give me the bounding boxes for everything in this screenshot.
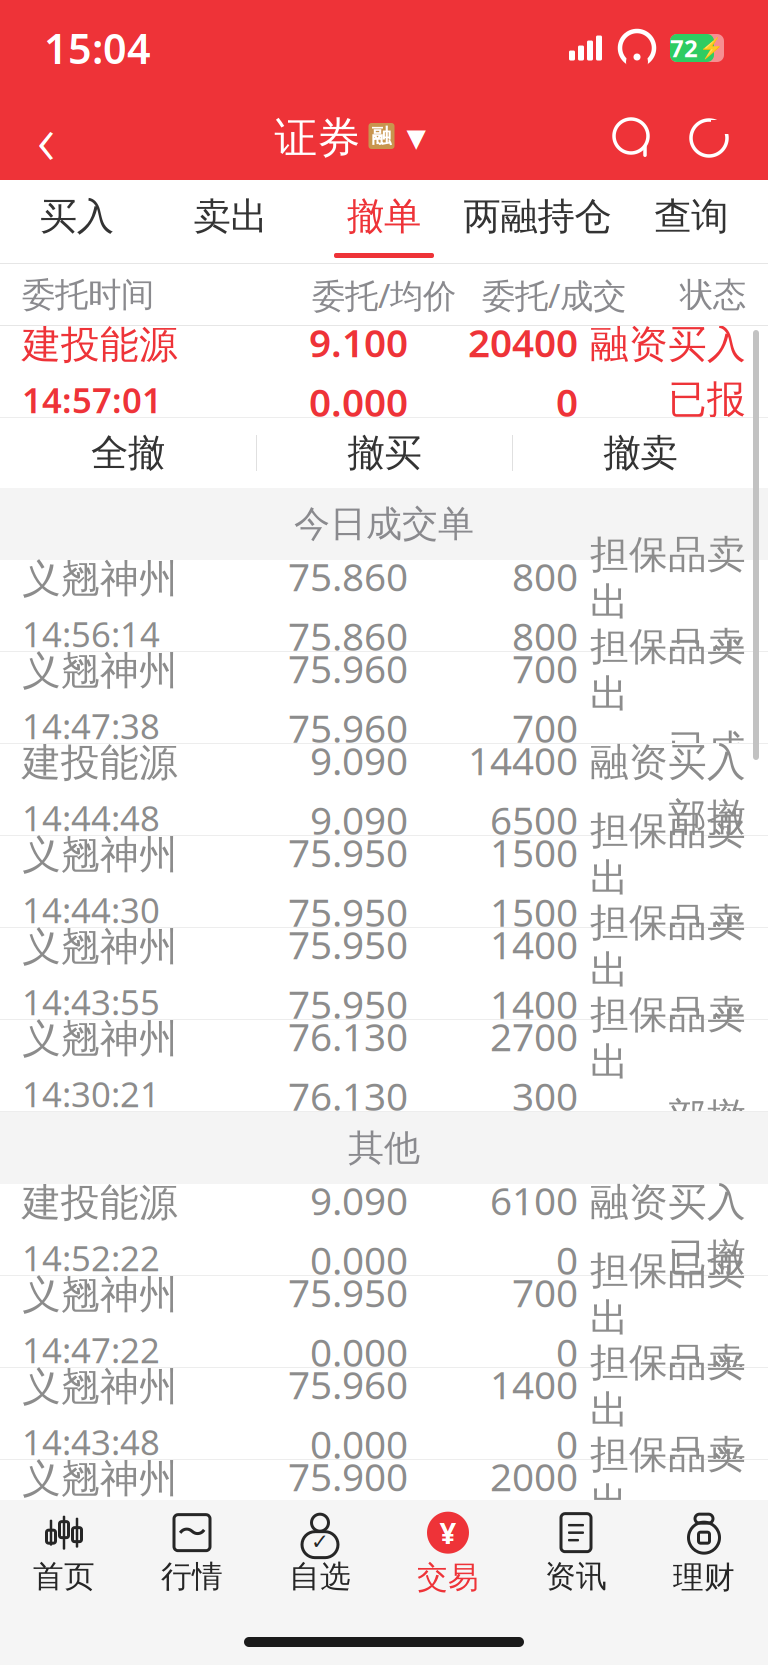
- staticText: 700: [512, 643, 578, 694]
- staticText: 300: [512, 1070, 578, 1121]
- button[interactable]: 建投能源: [0, 744, 768, 836]
- button[interactable]: 首页: [0, 1500, 128, 1608]
- staticText: 9.090: [310, 735, 408, 786]
- button[interactable]: 刷新: [684, 96, 734, 180]
- staticText: 融资买入: [590, 320, 746, 368]
- staticText: 0.000: [310, 1326, 408, 1377]
- button[interactable]: ✓: [256, 1500, 384, 1608]
- staticText: 75.900: [288, 1451, 408, 1502]
- button[interactable]: 义翘神州: [0, 652, 768, 744]
- staticText: 0.000: [310, 1510, 408, 1561]
- staticText: 75.950: [288, 919, 408, 970]
- staticText: 证券: [274, 112, 360, 164]
- staticText: 75.950: [288, 827, 408, 878]
- staticText: 自选: [289, 1558, 351, 1595]
- staticText: 72: [670, 32, 698, 64]
- staticText: 卖出: [193, 194, 267, 239]
- staticText: 15:04: [44, 21, 151, 75]
- button[interactable]: 搜索: [608, 96, 658, 180]
- button[interactable]: 全撤: [0, 418, 256, 488]
- staticText: 800: [512, 551, 578, 602]
- staticText: 交易: [417, 1559, 479, 1596]
- button[interactable]: 义翘神州: [0, 1276, 768, 1368]
- staticText: 已成: [668, 634, 746, 681]
- staticText: 9.090: [310, 1175, 408, 1226]
- button[interactable]: 买入: [0, 180, 154, 264]
- staticText: 1500: [490, 827, 578, 878]
- staticText: 9.100: [309, 317, 408, 368]
- staticText: 14:44:30: [22, 887, 160, 933]
- button[interactable]: 义翘神州: [0, 836, 768, 928]
- button[interactable]: 查询: [614, 180, 768, 264]
- staticText: 理财: [673, 1559, 735, 1596]
- staticText: 部撤: [668, 794, 746, 841]
- staticText: 9.090: [310, 794, 408, 845]
- staticText: ¥: [439, 1513, 456, 1552]
- staticText: 委托/均价: [312, 273, 456, 317]
- button[interactable]: 理财: [640, 1500, 768, 1608]
- staticText: 撤单: [347, 194, 421, 239]
- button[interactable]: 证券: [274, 96, 425, 180]
- button[interactable]: 两融持仓: [461, 180, 614, 264]
- button[interactable]: 义翘神州: [0, 560, 768, 652]
- button[interactable]: 撤卖: [512, 418, 768, 488]
- staticText: 75.960: [288, 702, 408, 753]
- staticText: 担保品卖出: [590, 1339, 746, 1434]
- staticText: 0: [556, 1510, 578, 1561]
- button[interactable]: 资讯: [512, 1500, 640, 1608]
- staticText: 义翘神州: [22, 647, 178, 695]
- button[interactable]: ¥: [384, 1500, 512, 1608]
- staticText: 撤买: [347, 430, 421, 476]
- button[interactable]: 建投能源: [0, 1184, 768, 1276]
- staticText: 14:44:48: [22, 795, 160, 841]
- staticText: 今日成交单: [294, 502, 474, 546]
- staticText: 义翘神州: [22, 831, 178, 879]
- staticText: 0.000: [310, 1418, 408, 1469]
- staticText: 75.960: [288, 1359, 408, 1410]
- staticText: 0.000: [309, 376, 408, 427]
- staticText: 担保品卖出: [590, 1431, 746, 1526]
- staticText: 已成: [668, 910, 746, 957]
- staticText: 14:47:38: [22, 703, 160, 749]
- staticText: 已撤: [668, 1442, 746, 1489]
- staticText: 资讯: [545, 1558, 607, 1595]
- staticText: 20400: [468, 317, 578, 368]
- staticText: 部撤: [668, 1094, 746, 1141]
- staticText: 14:30:21: [22, 1071, 160, 1117]
- staticText: 已报: [668, 376, 746, 423]
- staticText: 已撤: [668, 1534, 746, 1581]
- button[interactable]: 建投能源: [0, 326, 768, 418]
- staticText: 0: [556, 1326, 578, 1377]
- staticText: ⚡: [699, 37, 724, 59]
- button[interactable]: 义翘神州: [0, 1368, 768, 1460]
- staticText: 14:47:22: [22, 1327, 160, 1373]
- staticText: 已成: [668, 1002, 746, 1049]
- staticText: 75.950: [288, 886, 408, 937]
- staticText: 14:43:55: [22, 979, 160, 1025]
- button[interactable]: 返回: [0, 96, 92, 180]
- staticText: 2000: [490, 1451, 578, 1502]
- button[interactable]: 义翘神州: [0, 928, 768, 1020]
- staticText: 75.950: [288, 1267, 408, 1318]
- staticText: 首页: [33, 1558, 95, 1595]
- staticText: 0: [556, 376, 578, 427]
- staticText: 委托/成交: [482, 273, 626, 317]
- staticText: 1500: [490, 886, 578, 937]
- button[interactable]: 义翘神州: [0, 1460, 768, 1552]
- button[interactable]: 义翘神州: [0, 1020, 768, 1112]
- staticText: 75.860: [288, 551, 408, 602]
- button[interactable]: 〜: [128, 1500, 256, 1608]
- staticText: 融: [371, 124, 391, 148]
- staticText: 14:40:02: [22, 1511, 160, 1557]
- staticText: 义翘神州: [22, 923, 178, 971]
- staticText: 1400: [490, 978, 578, 1029]
- button[interactable]: 卖出: [154, 180, 307, 264]
- staticText: 义翘神州: [22, 1271, 178, 1319]
- staticText: 6500: [490, 794, 578, 845]
- staticText: 义翘神州: [22, 1015, 178, 1063]
- button[interactable]: 撤单: [307, 180, 461, 264]
- staticText: 14400: [468, 735, 578, 786]
- button[interactable]: 撤买: [256, 418, 512, 488]
- staticText: 14:43:48: [22, 1419, 160, 1465]
- staticText: 两融持仓: [464, 194, 612, 239]
